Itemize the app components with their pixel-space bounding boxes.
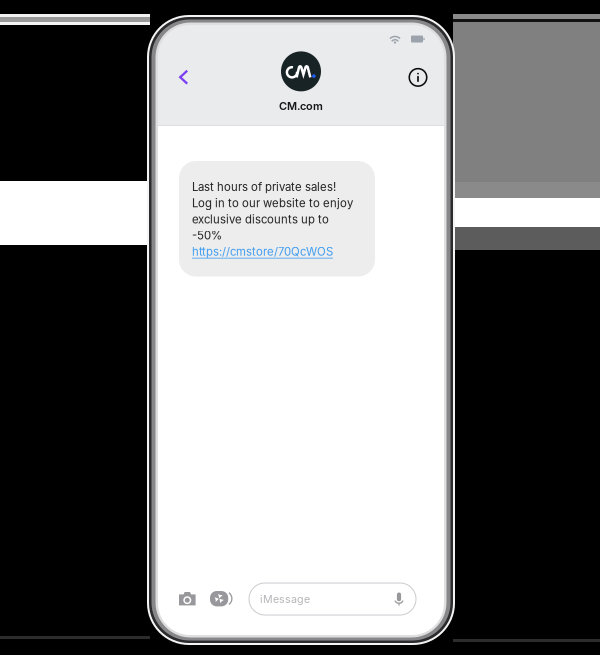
button[interactable]: Details bbox=[400, 59, 436, 95]
staticText: exclusive discounts up to bbox=[192, 212, 329, 226]
staticText: Log in to our website to enjoy bbox=[192, 196, 353, 210]
button[interactable]: iMessage bbox=[249, 583, 416, 615]
button[interactable]: Apps bbox=[210, 583, 233, 615]
staticText: CM.com bbox=[279, 99, 323, 113]
staticText: Last hours of private sales! bbox=[192, 180, 336, 194]
staticText: https://cmstore/70QcWOS bbox=[192, 245, 333, 258]
button[interactable]: Camera bbox=[179, 583, 196, 615]
staticText: iMessage bbox=[260, 592, 310, 605]
staticText: -50% bbox=[192, 229, 222, 242]
button[interactable]: Back bbox=[166, 59, 202, 95]
